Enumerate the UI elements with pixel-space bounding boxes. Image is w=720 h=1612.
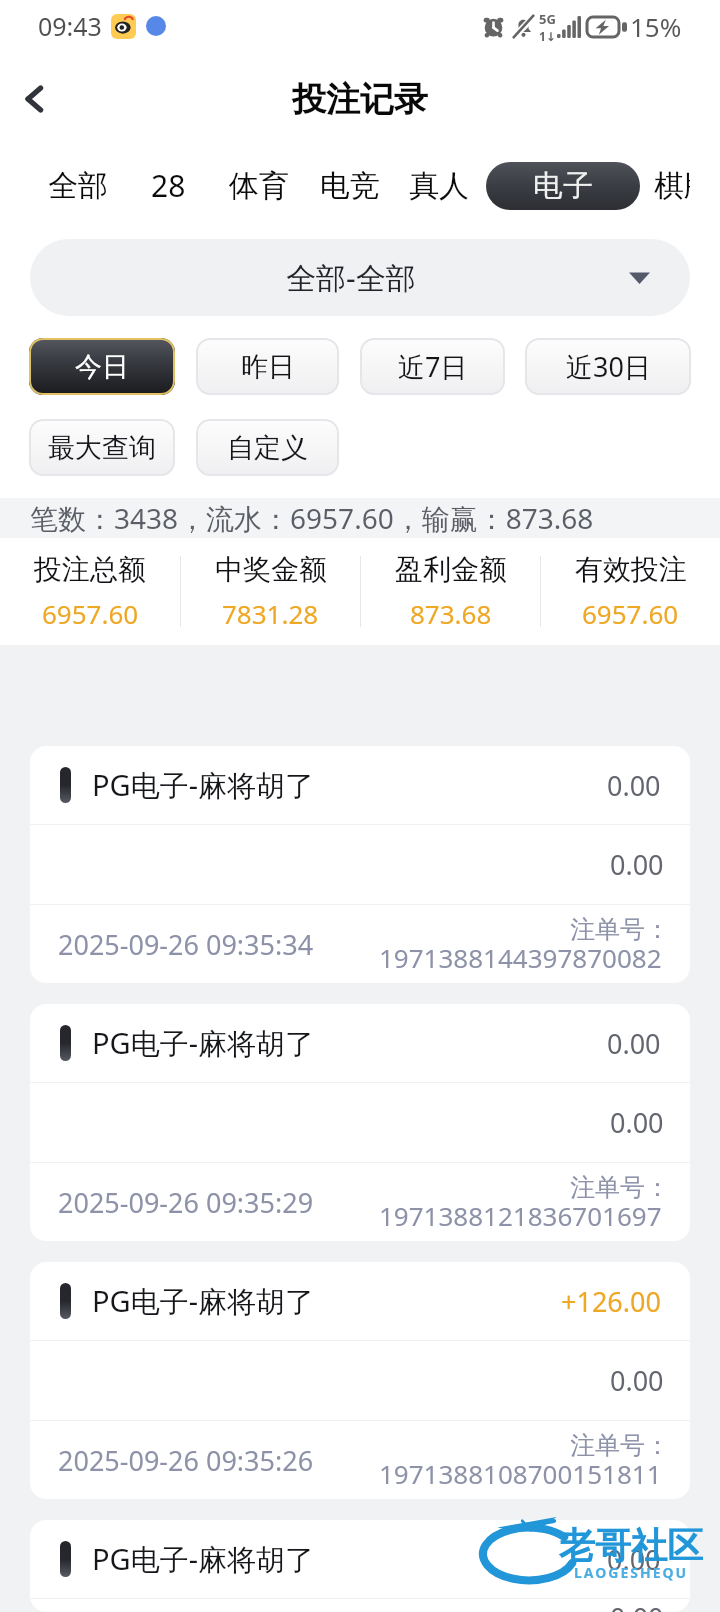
staticText: 昨日 [241, 350, 295, 384]
staticText: 1↓ [539, 28, 556, 44]
button[interactable]: 近30日 [525, 338, 691, 395]
staticText: 电子 [533, 167, 593, 205]
staticText: 0.00 [610, 1362, 664, 1399]
button[interactable]: 电子 [486, 162, 640, 210]
staticText: 2025-09-26 09:35:29 [58, 1184, 314, 1221]
staticText: PG电子-麻将胡了 [92, 1539, 314, 1579]
staticText: 2025-09-26 09:35:26 [58, 1442, 314, 1479]
staticText: 873.68 [410, 596, 492, 631]
staticText: 全部 [48, 167, 108, 205]
staticText: 有效投注 [575, 552, 687, 587]
staticText: 近30日 [566, 348, 651, 385]
staticText: 注单号： [570, 1172, 670, 1203]
staticText: 7831.28 [222, 596, 319, 631]
staticText: 2025-09-26 09:35:34 [58, 926, 314, 963]
staticText: 28 [151, 165, 186, 206]
button[interactable]: 真人 [409, 155, 469, 217]
staticText: 0.00 [607, 1025, 661, 1062]
staticText: 注单号： [570, 914, 670, 945]
staticText: 1971388121836701697 [379, 1198, 662, 1233]
staticText: 最大查询 [48, 431, 156, 465]
button[interactable]: 今日 [29, 338, 175, 395]
staticText: 中奖金额 [215, 552, 327, 587]
staticText: 全部-全部 [286, 257, 416, 298]
staticText: 真人 [409, 167, 469, 205]
staticText: 6957.60 [42, 596, 139, 631]
button[interactable]: 近7日 [360, 338, 505, 395]
staticText: 注单号： [570, 1430, 670, 1461]
button[interactable]: Back [2, 68, 64, 130]
staticText: 笔数：3438，流水：6957.60，输赢：873.68 [30, 499, 594, 537]
staticText: 盈利金额 [395, 552, 507, 587]
staticText: 体育 [229, 167, 289, 205]
button[interactable]: 体育 [229, 155, 289, 217]
button[interactable]: 28 [151, 153, 186, 218]
staticText: PG电子-麻将胡了 [92, 1281, 314, 1321]
staticText: +126.00 [561, 1283, 661, 1320]
button[interactable]: 棋牌 [654, 155, 690, 217]
staticText: 棋牌 [654, 167, 690, 205]
button[interactable]: 电竞 [320, 155, 380, 217]
staticText: 老哥社区 [559, 1523, 703, 1568]
staticText: 投注总额 [34, 552, 146, 587]
staticText: 投注记录 [292, 78, 428, 121]
staticText: 15% [630, 9, 682, 44]
button[interactable]: PG电子-麻将胡了 [30, 1004, 690, 1241]
staticText: 0.00 [610, 1104, 664, 1141]
staticText: 自定义 [227, 431, 308, 465]
staticText: 0.00 [607, 1541, 661, 1578]
staticText: 09:43 [38, 9, 102, 43]
button[interactable]: 全部 [48, 155, 108, 217]
staticText: LAOGESHEQU [574, 1563, 689, 1582]
staticText: 0.00 [610, 1599, 664, 1612]
staticText: 1971388144397870082 [379, 940, 662, 975]
staticText: 6957.60 [582, 596, 679, 631]
staticText: 近7日 [398, 348, 468, 385]
staticText: 电竞 [320, 167, 380, 205]
button[interactable]: 全部-全部 [30, 239, 690, 316]
button[interactable]: PG电子-麻将胡了 [30, 1520, 690, 1612]
staticText: 0.00 [610, 846, 664, 883]
button[interactable]: PG电子-麻将胡了 [30, 746, 690, 983]
staticText: 5G [539, 10, 556, 28]
button[interactable]: PG电子-麻将胡了 [30, 1262, 690, 1499]
staticText: 0.00 [607, 767, 661, 804]
staticText: 1971388108700151811 [379, 1456, 662, 1491]
staticText: PG电子-麻将胡了 [92, 1023, 314, 1063]
staticText: 今日 [75, 350, 129, 384]
staticText: PG电子-麻将胡了 [92, 765, 314, 805]
button[interactable]: 昨日 [196, 338, 339, 395]
button[interactable]: 最大查询 [29, 419, 175, 476]
button[interactable]: 自定义 [196, 419, 339, 476]
